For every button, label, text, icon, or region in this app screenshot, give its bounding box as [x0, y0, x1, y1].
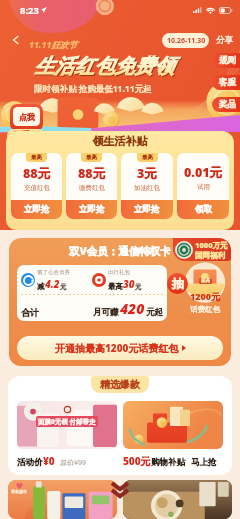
- staticText: 生活红包免费领: [34, 54, 174, 79]
- staticText: 8:23: [20, 4, 39, 17]
- staticText: 抽: [172, 276, 184, 291]
- staticText: 领生活补贴: [6, 134, 234, 148]
- button[interactable]: 点我: [10, 104, 43, 131]
- button[interactable]: 开通抽最高1200元话费红包: [17, 336, 223, 360]
- staticText: 元起: [146, 307, 163, 318]
- staticText: 88元: [23, 165, 51, 182]
- staticText: 88元: [78, 165, 106, 182]
- staticText: 1200元: [190, 290, 221, 302]
- staticText: 奖品: [219, 99, 236, 110]
- staticText: 出行礼包: [108, 269, 130, 276]
- staticText: 双V会员：通信特权卡: [69, 244, 171, 258]
- button[interactable]: 500元: [123, 401, 223, 468]
- button[interactable]: 规则: [212, 53, 240, 68]
- button[interactable]: [123, 480, 232, 519]
- staticText: 马上抢: [191, 457, 217, 468]
- staticText: 缴费红包: [79, 184, 105, 192]
- button[interactable]: 最高: [11, 153, 62, 219]
- staticText: 最高: [142, 154, 153, 161]
- staticText: 加油红包: [134, 184, 160, 192]
- button[interactable]: 拼手气: [7, 129, 45, 142]
- button[interactable]: 零食超市: [8, 480, 117, 519]
- button[interactable]: 0.01元: [177, 153, 229, 219]
- button[interactable]: 奖品: [212, 97, 240, 112]
- staticText: 420: [120, 299, 145, 318]
- staticText: 11.11狂欢节: [29, 39, 77, 51]
- button[interactable]: Back: [9, 33, 23, 47]
- staticText: 月可赚: [93, 307, 119, 318]
- staticText: 最高: [31, 154, 42, 161]
- button[interactable]: 面膜0元领 付邮带走: [17, 401, 117, 468]
- staticText: 拼手气: [13, 130, 39, 141]
- staticText: 30: [123, 277, 135, 291]
- staticText: 精选爆款: [100, 378, 140, 391]
- staticText: 国网福利: [195, 251, 225, 260]
- staticText: 原价¥99: [60, 458, 87, 468]
- staticText: 4.2: [45, 277, 60, 291]
- staticText: 零食超市: [11, 489, 27, 494]
- button[interactable]: 10.26-11.30: [162, 33, 209, 48]
- staticText: 元: [135, 283, 142, 291]
- button[interactable]: 最高: [121, 153, 173, 219]
- staticText: 最高: [201, 278, 210, 284]
- staticText: 话费红包: [190, 305, 220, 314]
- staticText: 1000万元: [195, 240, 228, 250]
- staticText: 充值红包: [24, 184, 50, 192]
- staticText: 领取: [195, 204, 212, 215]
- button[interactable]: 客服: [212, 75, 240, 90]
- button[interactable]: 1000万元: [173, 238, 231, 261]
- staticText: 客服: [219, 77, 236, 88]
- staticText: 合计: [21, 307, 39, 318]
- staticText: 活动价: [17, 457, 43, 468]
- staticText: 立即抢: [134, 204, 160, 215]
- staticText: 生活红包免费领: [35, 55, 175, 80]
- staticText: ¥0: [43, 454, 55, 468]
- staticText: 饿了么会员券: [37, 269, 70, 276]
- staticText: 500元: [123, 454, 151, 468]
- button[interactable]: 分享: [216, 35, 233, 46]
- button[interactable]: 最高: [66, 153, 117, 219]
- staticText: 减: [37, 282, 45, 291]
- staticText: 元: [60, 283, 67, 291]
- staticText: 开通抽最高1200元话费红包: [55, 341, 179, 355]
- staticText: 立即抢: [79, 204, 105, 215]
- staticText: 试用: [197, 183, 210, 191]
- staticText: 0.01元: [184, 164, 223, 181]
- staticText: 10.26-11.30: [167, 36, 206, 46]
- staticText: 限时领补贴 抢购最低11.11元起: [34, 83, 152, 95]
- staticText: 面膜0元领 付邮带走: [38, 417, 96, 426]
- staticText: 立即抢: [24, 204, 50, 215]
- button[interactable]: 抽: [167, 273, 188, 294]
- staticText: 点我: [19, 112, 35, 122]
- staticText: 最高: [108, 282, 123, 291]
- staticText: 最高: [86, 154, 97, 161]
- staticText: 购物补贴: [151, 457, 185, 468]
- staticText: 规则: [219, 55, 236, 66]
- staticText: 3元: [137, 165, 157, 182]
